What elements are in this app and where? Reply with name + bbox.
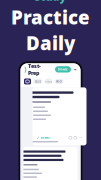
staticText: ⌁ [73, 66, 76, 72]
button[interactable]: All subjects [24, 78, 31, 84]
staticText: Daily [26, 31, 75, 55]
staticText: Quiz [35, 80, 41, 83]
staticText: Browse [58, 68, 68, 71]
button[interactable]: Mock [55, 79, 64, 84]
button[interactable]: Comment [69, 136, 72, 139]
button[interactable]: ✓ [36, 135, 50, 140]
staticText: Answer [40, 136, 50, 139]
button[interactable]: More [78, 135, 82, 140]
button[interactable]: Share [73, 67, 77, 71]
staticText: ✓ [36, 135, 39, 140]
staticText: ⋯ [78, 135, 82, 140]
button[interactable]: Quiz [33, 79, 42, 84]
button[interactable]: Bookmark [74, 136, 76, 139]
staticText: Mock [56, 80, 63, 83]
button[interactable]: Browse [55, 66, 71, 72]
staticText: TestPrep [28, 62, 41, 76]
staticText: Practice [11, 5, 90, 30]
staticText: Prev [45, 80, 51, 83]
staticText: Study [34, 0, 66, 4]
staticText: ⟩ [24, 66, 27, 73]
button[interactable]: Prev [44, 79, 52, 84]
button[interactable]: TestPrep home [24, 62, 41, 76]
